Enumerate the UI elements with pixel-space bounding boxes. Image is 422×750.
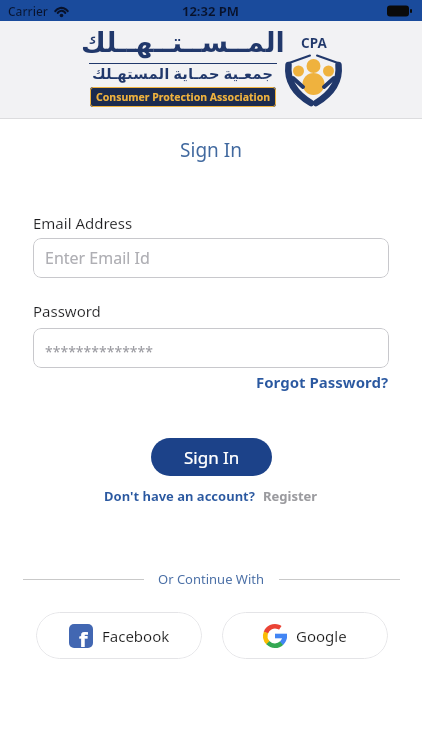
button[interactable]: ************** bbox=[33, 328, 389, 368]
staticText: ************** bbox=[45, 342, 153, 361]
staticText: Don't have an account? bbox=[104, 487, 255, 505]
staticText: Enter Email Id bbox=[45, 247, 150, 269]
button[interactable]: Google bbox=[222, 612, 388, 659]
staticText: f bbox=[79, 624, 88, 647]
button[interactable]: Enter Email Id bbox=[33, 238, 389, 278]
staticText: 12:32 PM bbox=[182, 2, 240, 20]
staticText: Or Continue With bbox=[158, 570, 265, 588]
button[interactable]: Don't have an account? bbox=[33, 487, 389, 505]
staticText: Sign In bbox=[33, 137, 389, 163]
staticText: Google bbox=[296, 626, 347, 646]
staticText: Password bbox=[33, 301, 101, 321]
staticText: المــســتــهــلك bbox=[81, 27, 285, 58]
button[interactable]: f bbox=[36, 612, 202, 659]
staticText: CPA bbox=[301, 34, 327, 52]
staticText: Facebook bbox=[102, 626, 170, 646]
button[interactable]: Sign In bbox=[151, 438, 272, 476]
staticText: Register bbox=[263, 487, 318, 505]
staticText: Consumer Protection Association bbox=[96, 90, 271, 104]
staticText: Sign In bbox=[184, 446, 240, 469]
staticText: Carrier bbox=[8, 3, 48, 19]
button[interactable]: Forgot Password? bbox=[256, 372, 389, 392]
staticText: Email Address bbox=[33, 213, 133, 233]
staticText: جمعـية حمـاية المستهـلك bbox=[92, 63, 274, 83]
